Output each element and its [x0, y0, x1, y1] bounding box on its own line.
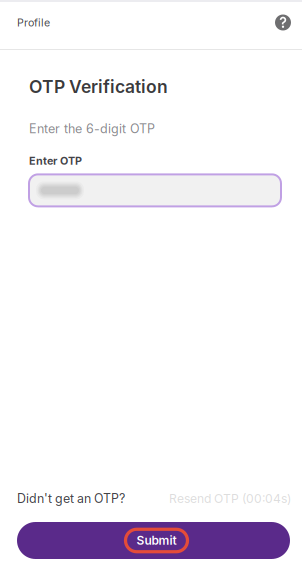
- button[interactable]: Submit: [17, 522, 290, 559]
- button[interactable]: Resend OTP (00:04s): [169, 491, 291, 506]
- staticText: Enter OTP: [29, 154, 82, 167]
- staticText: Enter the 6-digit OTP: [29, 121, 155, 136]
- button[interactable]: Profile: [0, 2, 50, 49]
- staticText: Profile: [17, 16, 50, 29]
- staticText: Resend OTP (00:04s): [169, 491, 291, 506]
- staticText: OTP Verification: [29, 76, 168, 97]
- button[interactable]: Help: [275, 14, 291, 30]
- staticText: Didn't get an OTP?: [17, 491, 125, 506]
- staticText: Submit: [136, 533, 176, 548]
